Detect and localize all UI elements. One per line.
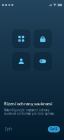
button[interactable]: Zpět: [4, 125, 13, 133]
button[interactable]: Nastavení: [33, 52, 52, 70]
button[interactable]: Účet: [12, 52, 30, 70]
button[interactable]: Další: [48, 126, 60, 132]
staticText: Další: [50, 127, 57, 131]
staticText: Řízení ochrany soukromí: [4, 101, 52, 106]
staticText: Zpět: [5, 127, 12, 131]
button[interactable]: Zabezpečení: [33, 29, 52, 48]
staticText: Nakonfigurujte nastavení ochrany soukrom…: [4, 108, 55, 115]
button[interactable]: Přehled: [12, 29, 30, 48]
